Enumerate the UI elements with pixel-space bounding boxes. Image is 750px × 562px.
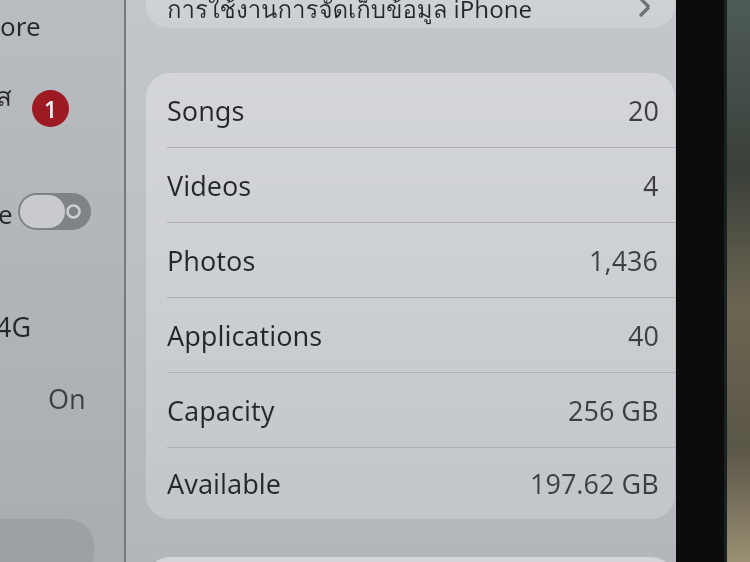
button[interactable]: การใช้งานการจัดเก็บข้อมูล iPhone [146,0,675,28]
staticText: Capacity [167,392,275,429]
staticText: e [0,196,13,231]
button[interactable]: Photos [146,223,675,297]
staticText: Available [167,465,281,502]
button[interactable]: Songs [146,73,675,147]
button[interactable]: 1 notification [32,90,69,127]
staticText: 256 GB [568,392,659,429]
staticText: 1,436 [589,242,659,279]
staticText: ore [0,8,41,43]
button[interactable]: Toggle, off [18,193,91,230]
staticText: Photos [167,242,256,279]
button[interactable]: Applications [146,298,675,372]
staticText: 4 [643,167,659,204]
staticText: Applications [167,317,323,354]
staticText: Videos [167,167,252,204]
staticText: On [48,380,86,417]
staticText: การใช้งานการจัดเก็บข้อมูล iPhone [167,0,533,28]
staticText: ส [0,76,12,117]
staticText: 1 [44,93,58,124]
staticText: 20 [628,92,659,129]
staticText: Songs [167,92,245,129]
staticText: 197.62 GB [530,465,659,502]
button[interactable]: Capacity [146,373,675,447]
button[interactable]: Available [146,448,675,519]
button[interactable]: Videos [146,148,675,222]
staticText: 40 [628,317,659,354]
staticText: 4G [0,308,32,345]
button[interactable] [146,557,675,562]
